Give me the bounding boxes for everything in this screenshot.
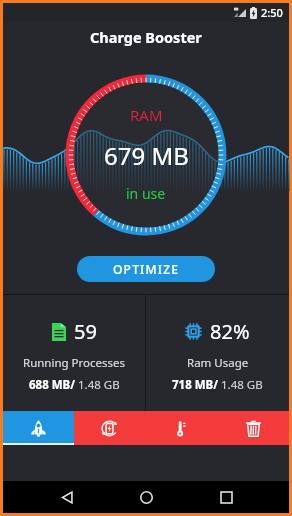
button[interactable]: Back xyxy=(51,481,83,513)
staticText: 718 MB/ xyxy=(172,377,218,393)
staticText: Ram Usage xyxy=(187,355,249,371)
button[interactable]: 59 xyxy=(3,295,145,411)
staticText: 59 xyxy=(74,318,97,345)
staticText: in use xyxy=(126,184,166,203)
staticText: Running Processes xyxy=(23,355,126,371)
staticText: RAM xyxy=(130,105,163,125)
button[interactable]: 82% xyxy=(146,295,289,411)
staticText: OPTIMIZE xyxy=(113,261,180,277)
button[interactable]: Battery saver xyxy=(74,411,145,445)
staticText: 2:50 xyxy=(261,5,283,20)
staticText: 1.48 GB xyxy=(218,377,263,393)
button[interactable]: Recent apps xyxy=(210,481,242,513)
button[interactable]: OPTIMIZE xyxy=(77,256,215,282)
staticText: 688 MB/ xyxy=(29,377,75,393)
button[interactable]: Junk cleaner xyxy=(217,411,289,445)
staticText: Charge Booster xyxy=(90,27,202,47)
staticText: 679 MB xyxy=(104,139,189,172)
staticText: 1.48 GB xyxy=(75,377,120,393)
button[interactable]: Home xyxy=(130,481,162,513)
staticText: 82% xyxy=(210,318,250,345)
button[interactable]: CPU cooler xyxy=(145,411,217,445)
button[interactable]: Boost xyxy=(3,411,74,445)
